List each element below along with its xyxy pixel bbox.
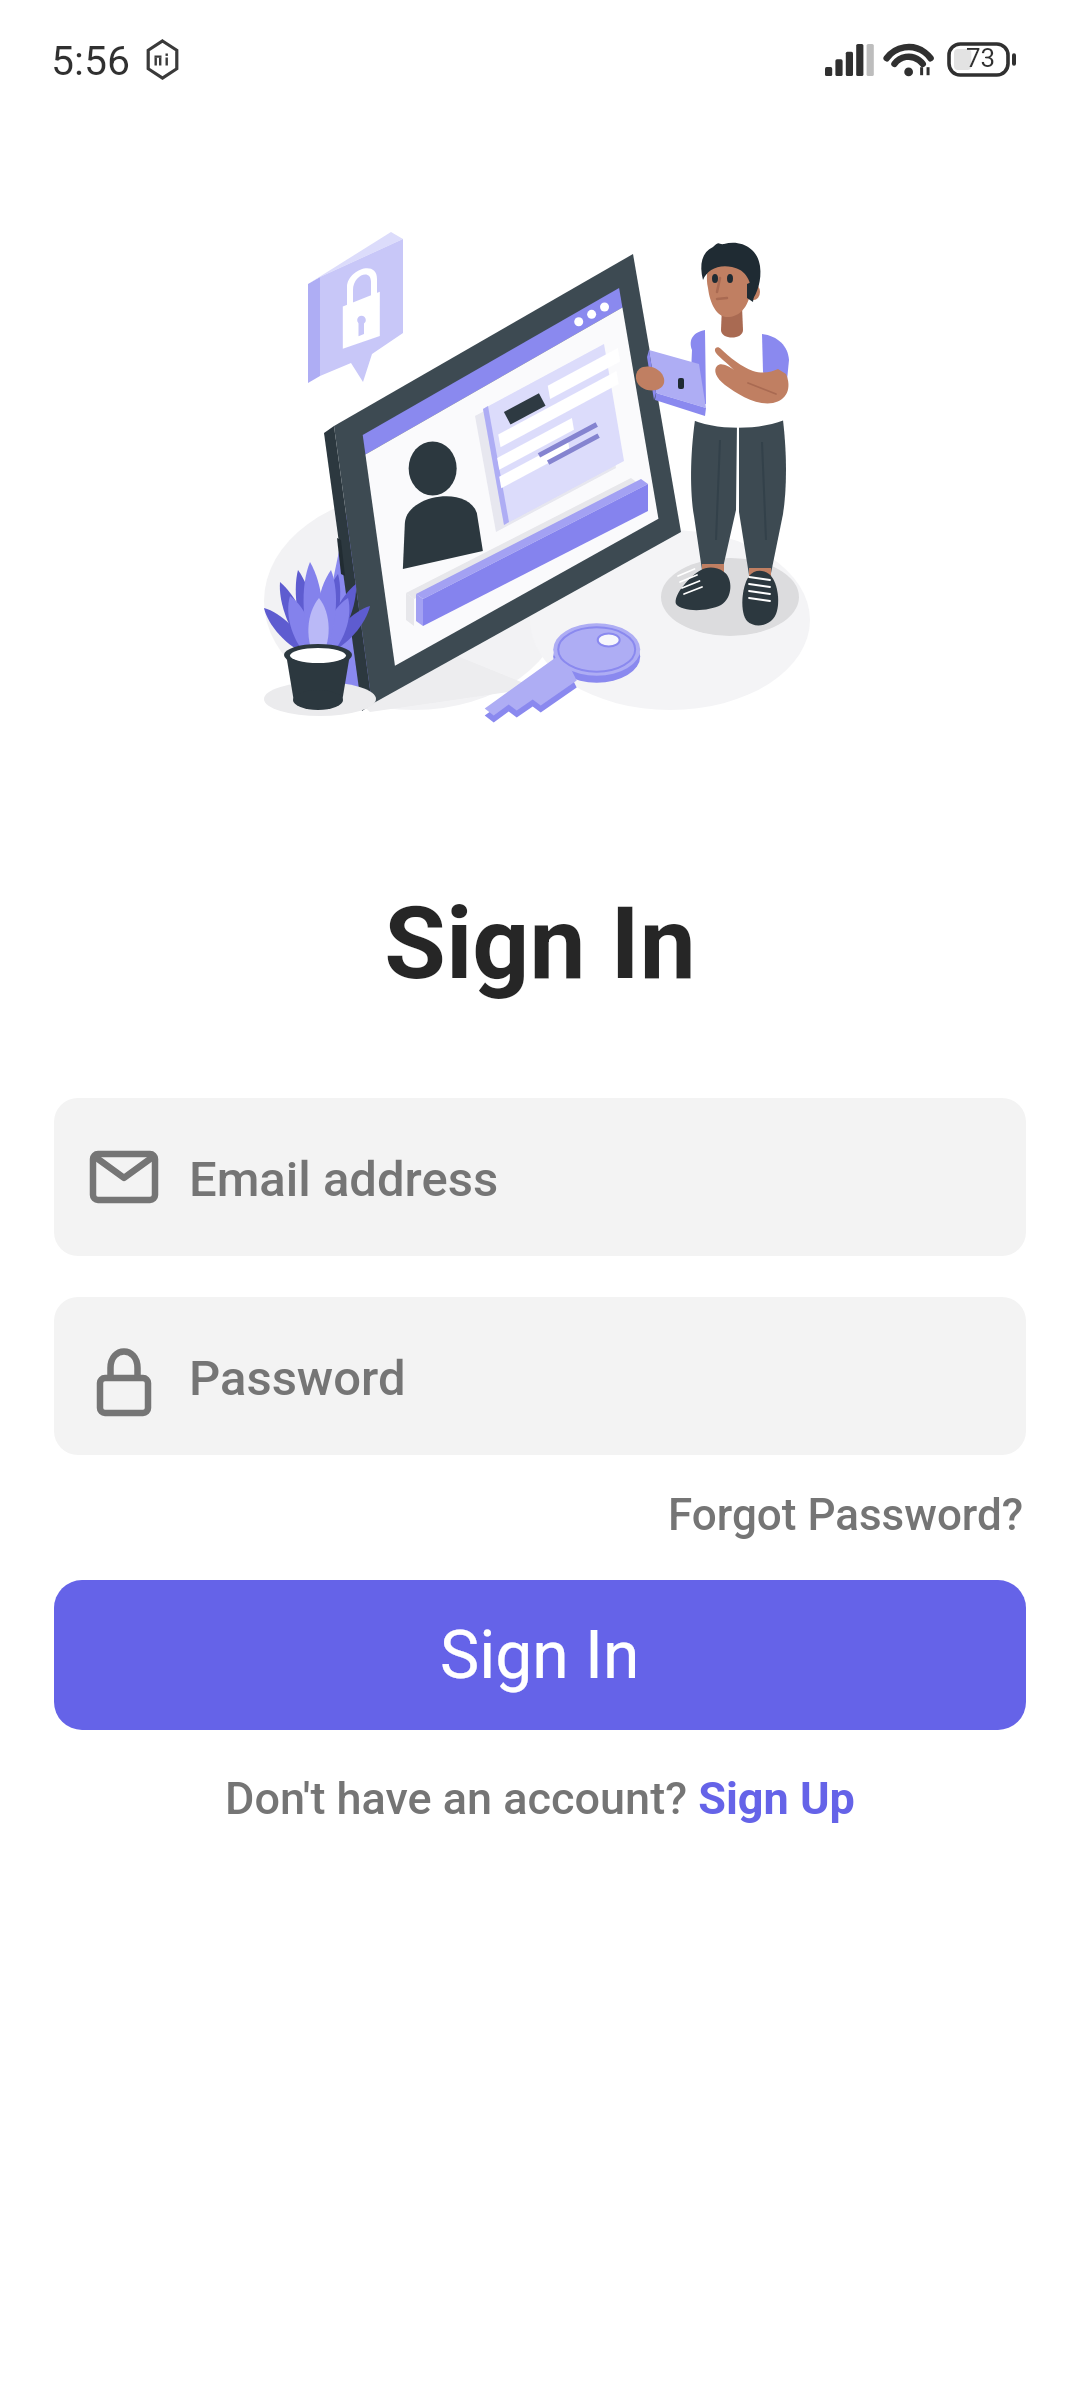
button[interactable]: Email address [54, 1098, 1026, 1256]
staticText: Password [189, 1350, 406, 1407]
staticText: Forgot Password? [668, 1489, 1024, 1541]
staticText: 73 [966, 43, 996, 73]
button[interactable]: Sign In [54, 1580, 1026, 1730]
button[interactable]: Don't have an account? Sign Up [215, 1764, 865, 1833]
staticText: 5:56 [51, 37, 131, 85]
button[interactable]: Forgot Password? [654, 1481, 1038, 1549]
staticText: Sign In [440, 1617, 640, 1694]
button[interactable]: Password [54, 1297, 1026, 1455]
staticText: Don't have an account? Sign Up [225, 1772, 855, 1825]
other: Brand [146, 41, 179, 78]
staticText: Email address [189, 1151, 499, 1208]
staticText: Sign In [0, 885, 1080, 1002]
